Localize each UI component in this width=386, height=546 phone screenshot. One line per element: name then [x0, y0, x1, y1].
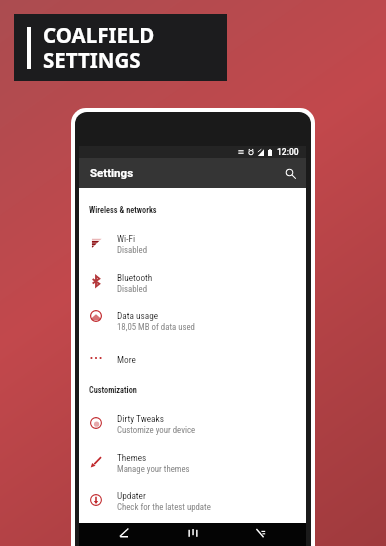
staticText: Disabled: [117, 284, 148, 294]
button[interactable]: Dirty Tweaks: [79, 404, 306, 443]
button[interactable]: Search: [280, 163, 300, 183]
staticText: Settings: [90, 166, 134, 179]
staticText: Customization: [89, 385, 137, 395]
staticText: Data usage: [117, 310, 159, 321]
button[interactable]: More: [79, 345, 306, 384]
staticText: COALFIELD: [43, 21, 155, 49]
staticText: Customize your device: [117, 425, 196, 435]
button[interactable]: Bluetooth: [79, 263, 306, 302]
button[interactable]: Themes: [79, 443, 306, 482]
button[interactable]: Wi-Fi: [79, 224, 306, 263]
staticText: 18,05 MB of data used: [117, 322, 195, 332]
staticText: Wireless & networks: [89, 205, 157, 215]
staticText: Disabled: [117, 245, 148, 255]
staticText: Manage your themes: [117, 464, 190, 474]
button[interactable]: Back: [79, 523, 155, 546]
staticText: Check for the latest update: [117, 502, 211, 512]
staticText: Bluetooth: [117, 272, 153, 283]
staticText: Dirty Tweaks: [117, 413, 164, 424]
staticText: 12:00: [277, 147, 299, 157]
staticText: Themes: [117, 452, 147, 463]
staticText: SETTINGS: [43, 46, 141, 74]
button[interactable]: Recent apps: [230, 523, 306, 546]
button[interactable]: Home: [155, 523, 231, 546]
staticText: Wi-Fi: [117, 233, 136, 244]
button[interactable]: Data usage: [79, 301, 306, 340]
staticText: More: [117, 354, 136, 365]
staticText: Updater: [117, 490, 146, 501]
button[interactable]: Updater: [79, 481, 306, 520]
